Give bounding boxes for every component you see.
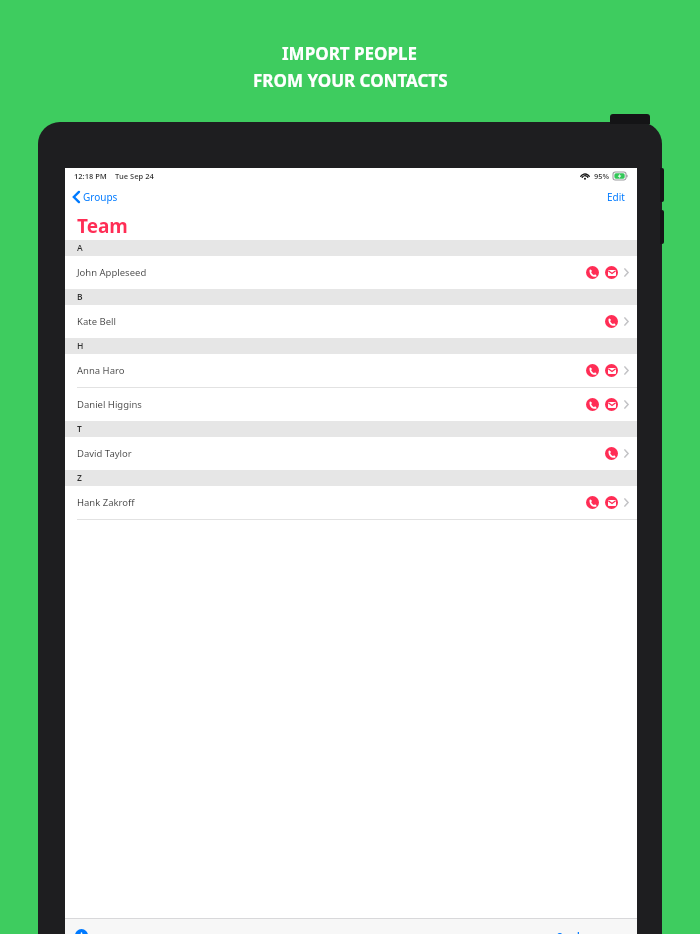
staticText: John Appleseed bbox=[77, 266, 147, 279]
staticText: T bbox=[77, 423, 82, 435]
button[interactable]: Daniel Higgins bbox=[65, 388, 637, 421]
button[interactable]: Groups bbox=[71, 187, 120, 207]
staticText: Kate Bell bbox=[77, 315, 116, 328]
staticText: B bbox=[77, 291, 83, 303]
staticText: Edit bbox=[607, 190, 625, 204]
button[interactable]: Call Anna Haro bbox=[586, 364, 599, 377]
button[interactable]: Call Hank Zakroff bbox=[586, 496, 599, 509]
button[interactable]: Message Hank Zakroff bbox=[605, 496, 618, 509]
button[interactable]: Call Daniel Higgins bbox=[586, 398, 599, 411]
staticText: FROM YOUR CONTACTS bbox=[253, 69, 448, 92]
staticText: Tue Sep 24 bbox=[115, 171, 154, 181]
button[interactable]: Hank Zakroff bbox=[65, 486, 637, 519]
button[interactable]: Kate Bell bbox=[65, 305, 637, 338]
staticText: David Taylor bbox=[77, 447, 132, 460]
button[interactable]: Send message bbox=[554, 926, 627, 934]
staticText: 12:18 PM bbox=[74, 171, 107, 181]
staticText: Hank Zakroff bbox=[77, 496, 135, 509]
button[interactable]: Message John Appleseed bbox=[605, 266, 618, 279]
staticText: A bbox=[77, 242, 83, 254]
staticText: Send message bbox=[557, 929, 624, 934]
button[interactable]: Message Anna Haro bbox=[605, 364, 618, 377]
staticText: Z bbox=[77, 472, 82, 484]
button[interactable]: Anna Haro bbox=[65, 354, 637, 387]
button[interactable]: Call David Taylor bbox=[605, 447, 618, 460]
button[interactable]: Add person bbox=[75, 929, 88, 934]
staticText: IMPORT PEOPLE bbox=[282, 42, 418, 65]
button[interactable]: David Taylor bbox=[65, 437, 637, 470]
staticText: Groups bbox=[83, 190, 118, 204]
button[interactable]: Edit bbox=[603, 187, 629, 207]
staticText: Anna Haro bbox=[77, 364, 125, 377]
button[interactable]: Call John Appleseed bbox=[586, 266, 599, 279]
staticText: 95% bbox=[594, 171, 610, 181]
staticText: Team bbox=[77, 213, 128, 239]
button[interactable]: Message Daniel Higgins bbox=[605, 398, 618, 411]
staticText: H bbox=[77, 340, 84, 352]
button[interactable]: Call Kate Bell bbox=[605, 315, 618, 328]
staticText: Daniel Higgins bbox=[77, 398, 142, 411]
button[interactable]: John Appleseed bbox=[65, 256, 637, 289]
